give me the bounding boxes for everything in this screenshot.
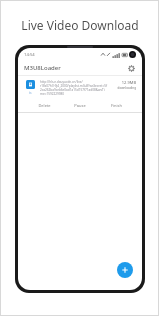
- staticText: Delete: [38, 103, 51, 108]
- staticText: ts: [29, 91, 32, 95]
- staticText: Pause: [74, 103, 86, 108]
- button[interactable]: Add download: [117, 262, 133, 278]
- button[interactable]: Pause: [62, 100, 98, 110]
- button[interactable]: Finish: [98, 100, 134, 110]
- staticText: Live Video Download: [21, 17, 139, 33]
- staticText: downloading: [117, 86, 136, 90]
- staticText: 14:54: [24, 52, 35, 58]
- button[interactable]: ts: [24, 80, 136, 96]
- button[interactable]: Settings: [126, 63, 136, 73]
- button[interactable]: Delete: [26, 100, 62, 110]
- staticText: http://hls.e.douyucdn.cn/live/r18s07h7r9…: [40, 80, 107, 96]
- staticText: Finish: [111, 103, 122, 108]
- staticText: 12.9MB: [121, 80, 136, 85]
- staticText: M3U8Loader: [24, 64, 61, 72]
